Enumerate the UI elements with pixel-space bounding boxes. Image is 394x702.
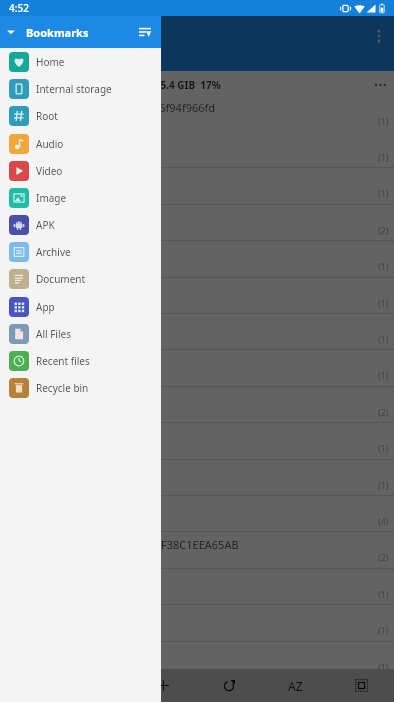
staticText: AZ: [288, 678, 303, 694]
staticText: (1): [378, 624, 389, 636]
staticText: 4:52: [9, 1, 29, 15]
button[interactable]: Recent files: [0, 347, 161, 374]
button[interactable]: Recordings: [0, 568, 394, 604]
button[interactable]: Movies: [0, 313, 394, 349]
staticText: (1): [378, 479, 389, 491]
button[interactable]: Notifications: [0, 386, 394, 422]
staticText: (4): [378, 515, 389, 527]
button[interactable]: Bookmarks: [0, 16, 161, 48]
staticText: Audio: [36, 137, 64, 151]
staticText: (1): [378, 260, 389, 272]
staticText: Music: [48, 355, 79, 370]
staticText: Root: [36, 109, 58, 123]
staticText: DCIM: [48, 210, 77, 225]
staticText: (1): [378, 661, 389, 673]
staticText: Video: [36, 164, 63, 178]
staticText: (1): [378, 333, 389, 345]
staticText: (2): [378, 224, 389, 236]
staticText: Movies: [48, 319, 85, 334]
button[interactable]: Sort: [262, 669, 328, 702]
button[interactable]: Documents: [0, 240, 394, 276]
staticText: Android: [48, 173, 90, 188]
button[interactable]: APK: [0, 211, 161, 238]
staticText: Recycle bin: [36, 381, 89, 395]
staticText: Recovery-2024-1D3B9F38C1EEA65AB: [48, 537, 239, 552]
staticText: (2): [378, 406, 389, 418]
button[interactable]: Alarms: [0, 131, 394, 167]
button[interactable]: Sounds: [0, 604, 394, 640]
button[interactable]: Refresh: [196, 669, 262, 702]
button[interactable]: DCIM: [0, 204, 394, 240]
staticText: Document: [36, 272, 86, 286]
button[interactable]: Download: [0, 277, 394, 313]
staticText: (1): [378, 442, 389, 454]
staticText: (1): [378, 115, 389, 127]
button[interactable]: System: [0, 641, 394, 677]
button[interactable]: Podcasts: [0, 459, 394, 495]
staticText: (1): [378, 369, 389, 381]
button[interactable]: Sort bookmarks: [133, 20, 157, 44]
staticText: 7.71 GIB / 45.4 GIB 17%: [105, 78, 221, 92]
staticText: (2): [378, 551, 389, 563]
staticText: Recent files: [36, 354, 90, 368]
staticText: /storage/emulated/0/6f94f966fd: [48, 100, 216, 115]
staticText: App: [36, 300, 55, 314]
button[interactable]: Storage menu: [368, 74, 392, 98]
button[interactable]: All Files: [0, 320, 161, 347]
button[interactable]: Pictures: [0, 422, 394, 458]
button[interactable]: Add: [130, 669, 196, 702]
staticText: Internal storage: [36, 82, 112, 96]
button[interactable]: Select: [328, 669, 394, 702]
button[interactable]: Recovery-2024-1D3B9F38C1EEA65AB: [0, 531, 394, 567]
button[interactable]: Video: [0, 157, 161, 184]
button[interactable]: Music: [0, 349, 394, 385]
staticText: APK: [36, 218, 55, 232]
button[interactable]: Internal storage: [0, 75, 161, 102]
staticText: Bookmarks: [26, 25, 89, 40]
button[interactable]: Ringtones: [0, 495, 394, 531]
button[interactable]: /storage/emulated/0/6f94f966fd: [0, 94, 394, 131]
staticText: Image: [36, 191, 67, 205]
button[interactable]: Home: [0, 48, 161, 75]
button[interactable]: Root: [0, 102, 161, 129]
staticText: (1): [378, 151, 389, 163]
staticText: Notifications: [48, 392, 114, 407]
staticText: Home: [36, 55, 65, 69]
button[interactable]: Recycle bin: [0, 374, 161, 401]
button[interactable]: More options: [366, 23, 391, 48]
staticText: (1): [378, 297, 389, 309]
staticText: (1): [378, 588, 389, 600]
staticText: (1): [378, 187, 389, 199]
staticText: Archive: [36, 245, 71, 259]
button[interactable]: Audio: [0, 130, 161, 157]
button[interactable]: Archive: [0, 238, 161, 265]
button[interactable]: Image: [0, 184, 161, 211]
staticText: All Files: [36, 327, 71, 341]
staticText: Alarms: [48, 137, 85, 152]
staticText: Documents: [48, 246, 108, 261]
button[interactable]: Android: [0, 167, 394, 203]
button[interactable]: App: [0, 293, 161, 320]
button[interactable]: Document: [0, 265, 161, 292]
